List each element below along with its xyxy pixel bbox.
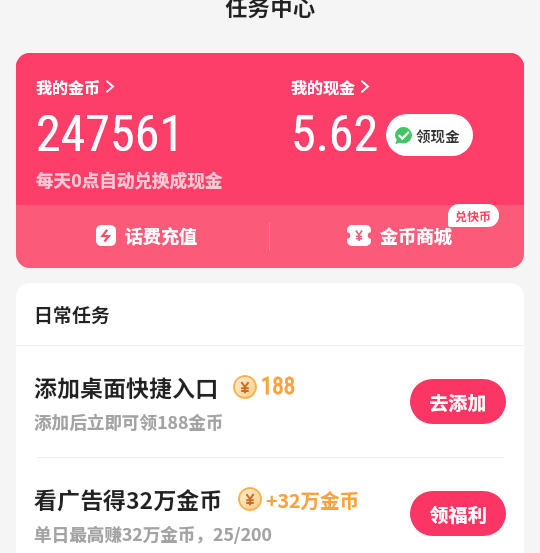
staticText: 我的金币 <box>36 75 101 98</box>
button[interactable]: 添加桌面快捷入口 <box>16 346 524 457</box>
button[interactable]: 金币商城 <box>270 205 524 268</box>
staticText: 188 <box>261 373 296 400</box>
staticText: 去添加 <box>429 388 487 416</box>
staticText: 247561 <box>36 105 185 164</box>
staticText: 看广告得32万金币 <box>34 482 223 515</box>
staticText: 添加后立即可领188金币 <box>34 409 224 434</box>
staticText: 单日最高赚32万金币，25/200 <box>34 521 272 546</box>
staticText: 兑快币 <box>455 207 492 224</box>
staticText: 金币商城 <box>380 222 452 248</box>
staticText: 我的现金 <box>291 75 356 98</box>
button[interactable]: 话费充值 <box>16 205 269 268</box>
staticText: 领福利 <box>429 500 487 528</box>
button[interactable]: 领现金 <box>386 114 473 156</box>
staticText: 5.62 <box>291 105 379 164</box>
staticText: 日常任务 <box>34 300 111 328</box>
staticText: +32万金币 <box>266 485 360 513</box>
staticText: 任务中心 <box>225 0 316 23</box>
button[interactable]: 看广告得32万金币 <box>16 458 524 553</box>
button[interactable]: 我的金币 <box>36 75 291 192</box>
button[interactable]: 去添加 <box>410 379 506 424</box>
button[interactable]: 领福利 <box>410 491 506 536</box>
staticText: 每天0点自动兑换成现金 <box>36 167 223 192</box>
button[interactable]: 我的现金 <box>291 75 369 98</box>
staticText: 添加桌面快捷入口 <box>34 370 218 403</box>
staticText: 领现金 <box>416 125 460 146</box>
staticText: 话费充值 <box>125 222 197 248</box>
